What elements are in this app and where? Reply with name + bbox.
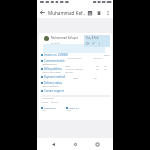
staticText: 2 items · Tax incl. [41,101,59,104]
staticText: 20 [94,77,97,80]
button[interactable]: Back [37,7,48,18]
button[interactable]: Payment method [41,75,66,79]
staticText: to me ▾ [51,41,60,44]
staticText: 20 [104,65,107,68]
staticText: Muhammad K. [41,63,58,66]
staticText: Feb 8 [104,54,110,57]
button[interactable]: More options [103,8,112,17]
staticText: Total [73,77,79,80]
staticText: Billing address [44,67,62,71]
staticText: Payment method [44,75,66,79]
staticText: Unit 12 Elm Street [41,71,61,74]
staticText: Out for delivery [41,85,59,88]
staticText: Tue, 8 Feb [86,36,99,40]
staticText: Reply all [69,106,79,109]
staticText: Contact support [44,89,64,93]
staticText: PDF [41,109,46,112]
staticText: now [66,109,72,112]
button[interactable]: Home [69,138,81,150]
button[interactable]: Customer details [41,59,65,63]
staticText: .00 [104,68,107,71]
staticText: Download [44,106,56,109]
staticText: Muhammad Kefayat [51,36,78,40]
staticText: Item [65,65,70,68]
button[interactable]: Muhammad Kef.. [48,10,85,16]
button[interactable]: Delivery status [41,81,62,85]
button[interactable]: Download [41,106,56,109]
button[interactable]: Contact support [41,89,64,93]
staticText: LINE ITEMS [41,97,54,100]
button[interactable]: Back [47,138,59,150]
staticText: .00 [96,68,99,71]
staticText: Customer details [44,59,65,63]
staticText: Invoice no. 2290841 [44,53,69,57]
button[interactable]: Invoice no. 2290841 [41,53,110,57]
staticText: AMOUNT [93,57,103,60]
button[interactable]: Delete [94,8,103,17]
staticText: tax 0.00 [65,71,73,74]
button[interactable]: Reply all [66,106,79,109]
staticText: DESCRIPTION [68,57,82,60]
staticText: Delivery status [44,81,62,85]
button[interactable]: Recents [91,138,103,150]
staticText: 1 x 20.00 subtotal [65,68,83,71]
staticText: 20 [96,65,99,68]
button[interactable]: Billing address [41,67,62,71]
button[interactable]: Archive [85,8,94,17]
